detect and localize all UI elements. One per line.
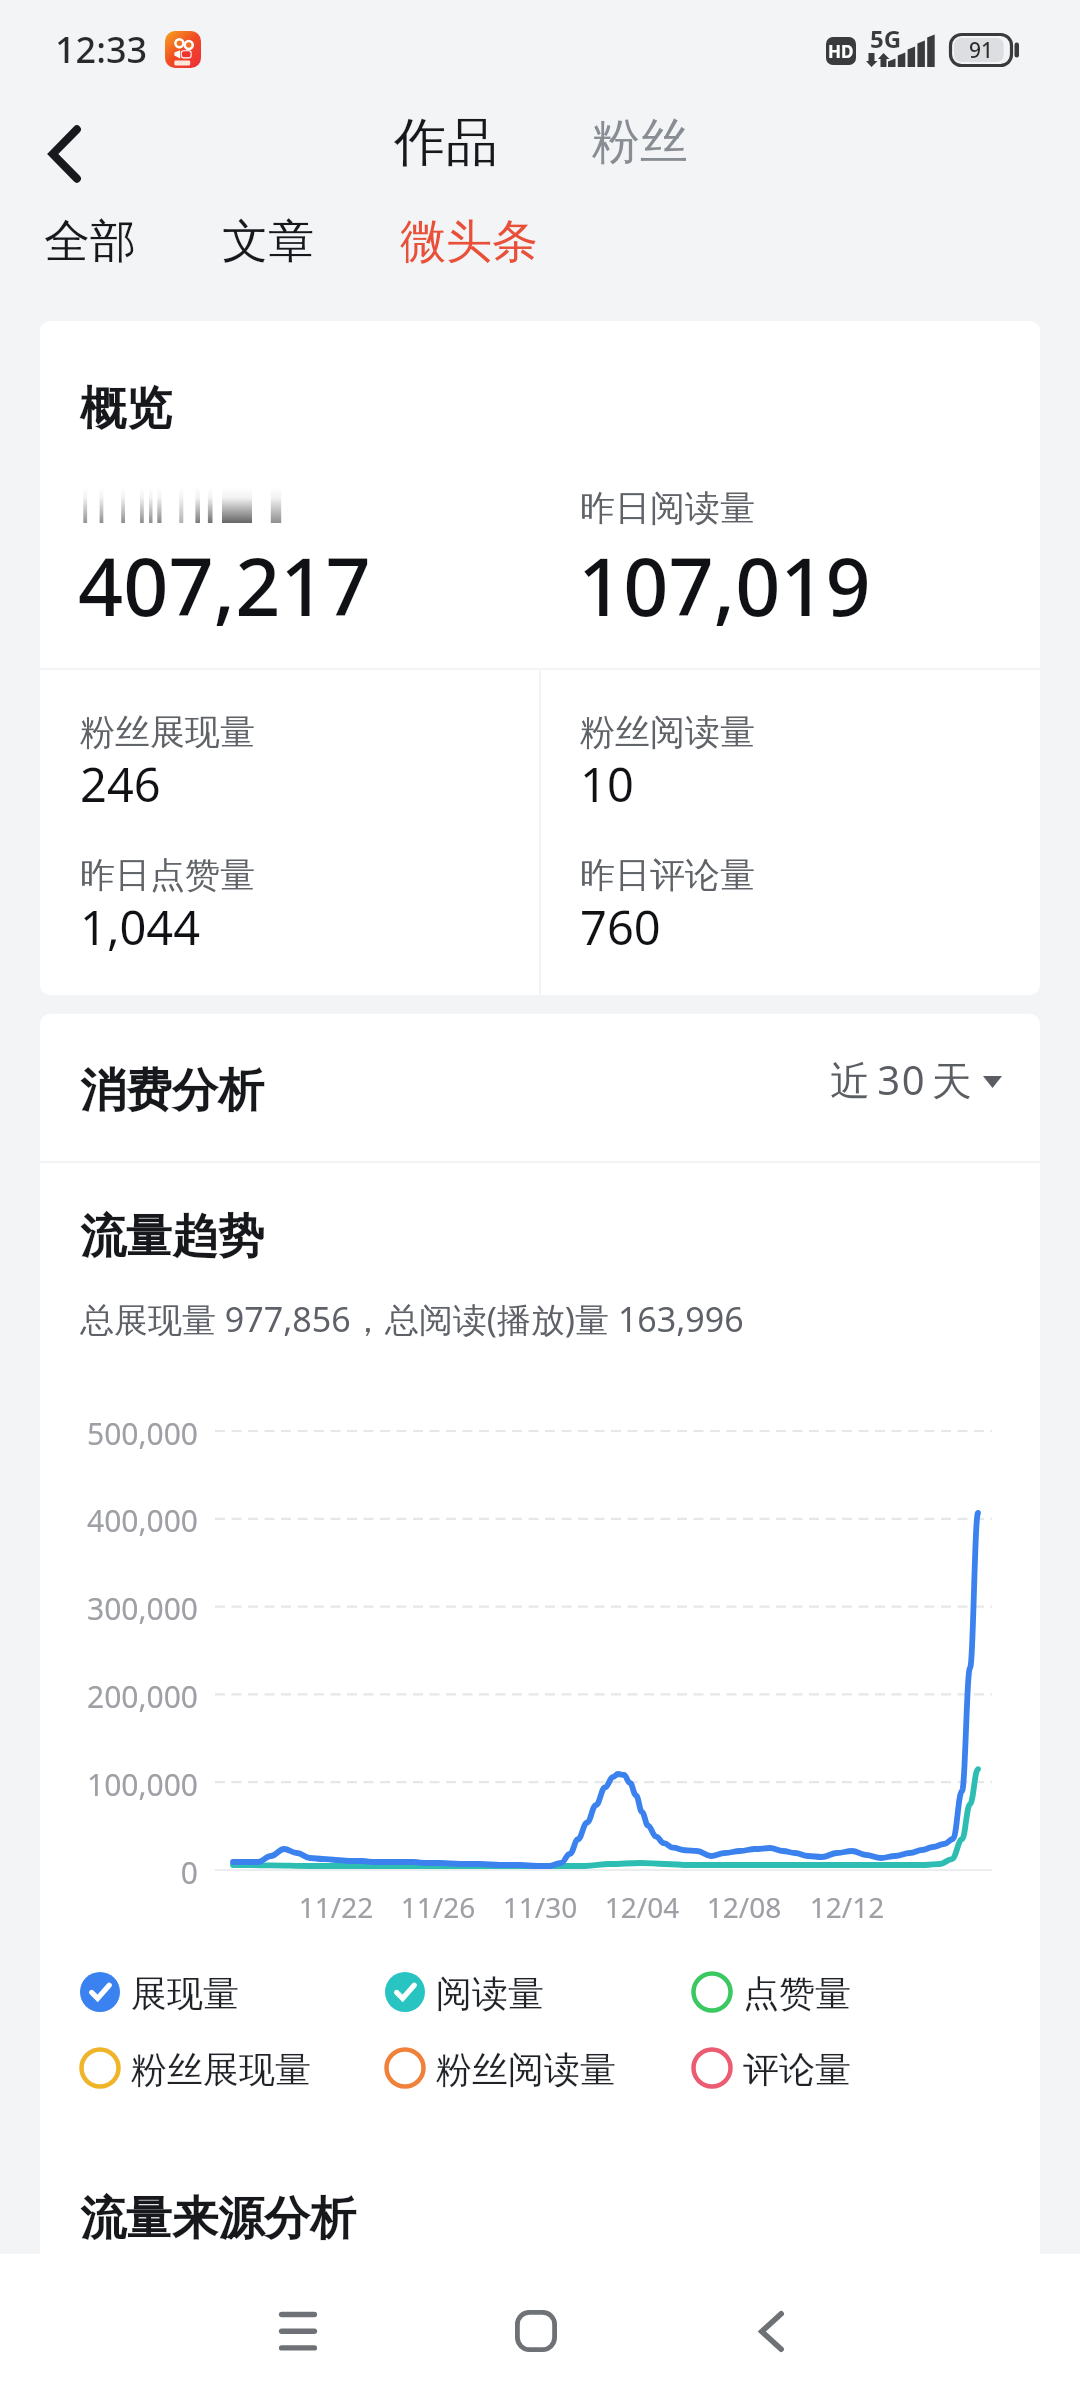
staticText: 昨日阅读量: [580, 486, 755, 530]
staticText: 阅读量: [436, 1971, 544, 2013]
button[interactable]: 粉丝展现量: [79, 2047, 331, 2089]
staticText: 昨日评论量: [580, 853, 755, 897]
button[interactable]: 近 30 天: [820, 1044, 1010, 1114]
button[interactable]: Back: [14, 104, 114, 204]
staticText: 11/22: [276, 1888, 396, 1926]
staticText: HD: [828, 40, 854, 63]
staticText: 760: [580, 895, 661, 959]
staticText: 100,000: [0, 1764, 198, 1805]
staticText: 500,000: [0, 1413, 198, 1454]
button[interactable]: 展现量: [79, 1971, 251, 2013]
staticText: 作品: [394, 110, 498, 176]
staticText: 407,217: [78, 532, 371, 640]
staticText: 91: [969, 36, 994, 65]
staticText: 5G: [870, 22, 902, 55]
staticText: 粉丝阅读量: [580, 710, 755, 754]
staticText: 200,000: [0, 1676, 198, 1717]
button[interactable]: 作品: [380, 100, 510, 182]
button[interactable]: 阅读量: [384, 1971, 556, 2013]
button[interactable]: 评论量: [691, 2047, 863, 2089]
staticText: 近 30 天: [830, 1052, 974, 1107]
staticText: 展现量: [131, 1971, 239, 2013]
staticText: 微头条: [400, 213, 538, 271]
staticText: 400,000: [0, 1500, 198, 1541]
staticText: 昨日点赞量: [80, 853, 255, 897]
button[interactable]: 粉丝阅读量: [384, 2047, 636, 2089]
staticText: 总展现量 977,856，总阅读(播放)量 163,996: [80, 1296, 744, 1342]
staticText: 246: [80, 752, 161, 816]
staticText: 107,019: [578, 532, 871, 640]
button[interactable]: 全部: [26, 196, 166, 282]
staticText: 粉丝展现量: [131, 2047, 311, 2089]
staticText: 12/08: [684, 1888, 804, 1926]
staticText: 点赞量: [743, 1971, 851, 2013]
staticText: 流量趋势: [80, 1208, 264, 1266]
staticText: 12/12: [787, 1888, 907, 1926]
button[interactable]: 文章: [204, 196, 344, 282]
staticText: 11/30: [480, 1888, 600, 1926]
staticText: 11/26: [378, 1888, 498, 1926]
button[interactable]: 粉丝: [578, 102, 702, 180]
staticText: 12:33: [55, 25, 148, 74]
staticText: 300,000: [0, 1588, 198, 1629]
button[interactable]: 点赞量: [691, 1971, 863, 2013]
staticText: 评论量: [743, 2047, 851, 2089]
staticText: 10: [580, 752, 634, 816]
staticText: 消费分析: [80, 1062, 264, 1120]
button[interactable]: Recent apps: [238, 2271, 358, 2391]
staticText: 文章: [222, 213, 314, 271]
staticText: 流量来源分析: [80, 2190, 356, 2248]
staticText: 12/04: [582, 1888, 702, 1926]
staticText: 粉丝: [592, 112, 688, 172]
staticText: 全部: [44, 213, 136, 271]
staticText: 粉丝展现量: [80, 710, 255, 754]
staticText: 概览: [80, 380, 172, 438]
staticText: 粉丝阅读量: [436, 2047, 616, 2089]
button[interactable]: Home: [476, 2271, 596, 2391]
button[interactable]: 微头条: [382, 196, 568, 282]
staticText: 0: [0, 1852, 198, 1893]
staticText: 1,044: [80, 895, 201, 959]
button[interactable]: Back: [711, 2271, 831, 2391]
